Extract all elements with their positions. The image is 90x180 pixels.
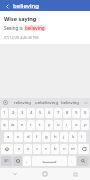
staticText: 7 bbox=[57, 110, 60, 116]
button[interactable]: . bbox=[68, 156, 76, 166]
button[interactable]: w bbox=[9, 120, 17, 130]
staticText: 1 bbox=[3, 110, 6, 116]
button[interactable]: 3 bbox=[18, 108, 26, 118]
button[interactable]: Back bbox=[0, 168, 30, 180]
button[interactable]: relieving bbox=[10, 98, 34, 107]
staticText: 6 bbox=[48, 110, 51, 116]
staticText: relieving bbox=[14, 100, 31, 106]
staticText: k bbox=[72, 134, 75, 140]
button[interactable]: 2 bbox=[9, 108, 17, 118]
button[interactable]: i bbox=[63, 120, 71, 130]
staticText: 9 bbox=[75, 110, 78, 116]
button[interactable]: r bbox=[27, 120, 35, 130]
staticText: d bbox=[27, 134, 30, 140]
button[interactable]: 8 bbox=[63, 108, 71, 118]
staticText: m bbox=[71, 146, 75, 152]
staticText: g bbox=[45, 134, 48, 140]
button[interactable]: t bbox=[36, 120, 44, 130]
button[interactable]: v bbox=[42, 144, 50, 154]
button[interactable]: d bbox=[24, 132, 32, 142]
staticText: z bbox=[18, 146, 20, 152]
staticText: Seeing is bbox=[4, 25, 24, 31]
button[interactable]: u bbox=[54, 120, 62, 130]
staticText: j bbox=[63, 134, 65, 140]
button[interactable]: k bbox=[69, 132, 77, 142]
staticText: i bbox=[66, 122, 68, 128]
button[interactable]: 5 bbox=[36, 108, 44, 118]
button[interactable]: 4 bbox=[27, 108, 35, 118]
staticText: n bbox=[63, 146, 66, 152]
staticText: 07/12/20 4:46:30 PM bbox=[4, 35, 39, 40]
button[interactable]: o bbox=[72, 120, 80, 130]
button[interactable]: unbelieving bbox=[34, 98, 58, 107]
button[interactable]: Space bbox=[32, 156, 67, 166]
staticText: 8 bbox=[66, 110, 69, 116]
staticText: w bbox=[11, 122, 15, 128]
staticText: believing bbox=[25, 25, 45, 31]
button[interactable]: 6 bbox=[45, 108, 53, 118]
button[interactable]: q bbox=[1, 120, 8, 130]
staticText: s bbox=[17, 134, 20, 140]
staticText: 3 bbox=[21, 110, 24, 116]
button[interactable]: s bbox=[14, 132, 23, 142]
button[interactable]: h bbox=[51, 132, 59, 142]
button[interactable]: !#1 bbox=[1, 156, 12, 166]
staticText: p bbox=[84, 122, 87, 128]
button[interactable]: believing bbox=[58, 98, 82, 107]
staticText: q bbox=[3, 122, 6, 128]
staticText: 0 bbox=[84, 110, 87, 116]
button[interactable]: More suggestions bbox=[82, 98, 90, 107]
button[interactable]: y bbox=[45, 120, 53, 130]
staticText: e bbox=[21, 122, 24, 128]
staticText: a bbox=[7, 134, 10, 140]
button[interactable]: n bbox=[60, 144, 68, 154]
button[interactable]: b bbox=[51, 144, 59, 154]
staticText: u bbox=[57, 122, 60, 128]
button[interactable]: believing bbox=[13, 0, 87, 11]
button[interactable]: f bbox=[33, 132, 41, 142]
button[interactable]: Backspace bbox=[78, 144, 89, 154]
button[interactable]: Home bbox=[30, 168, 60, 180]
button[interactable]: x bbox=[24, 144, 32, 154]
button[interactable]: m bbox=[69, 144, 77, 154]
staticText: r bbox=[30, 122, 32, 128]
staticText: o bbox=[75, 122, 78, 128]
button[interactable]: a bbox=[4, 132, 13, 142]
staticText: , bbox=[26, 158, 28, 164]
staticText: believing bbox=[13, 2, 39, 10]
staticText: h bbox=[54, 134, 57, 140]
staticText: c bbox=[36, 146, 39, 152]
button[interactable]: Back bbox=[3, 2, 11, 10]
button[interactable]: g bbox=[42, 132, 50, 142]
staticText: 5 bbox=[39, 110, 42, 116]
staticText: 4 bbox=[30, 110, 33, 116]
button[interactable]: z bbox=[14, 144, 23, 154]
button[interactable]: 9 bbox=[72, 108, 80, 118]
staticText: 2 bbox=[12, 110, 15, 116]
staticText: f bbox=[36, 134, 38, 140]
button[interactable]: e bbox=[18, 120, 26, 130]
button[interactable]: Recents bbox=[60, 168, 90, 180]
staticText: believing bbox=[61, 100, 79, 106]
button[interactable]: Search bbox=[77, 156, 89, 166]
button[interactable]: 1 bbox=[1, 108, 8, 118]
button[interactable]: , bbox=[23, 156, 31, 166]
button[interactable]: Emoji bbox=[13, 156, 22, 166]
staticText: Wise saying bbox=[4, 15, 37, 22]
button[interactable]: c bbox=[33, 144, 41, 154]
button[interactable]: j bbox=[60, 132, 68, 142]
button[interactable]: 7 bbox=[54, 108, 62, 118]
staticText: . bbox=[71, 158, 73, 164]
staticText: unbelieving bbox=[35, 100, 58, 106]
button[interactable]: Shift bbox=[1, 144, 13, 154]
staticText: t bbox=[39, 122, 41, 128]
button[interactable]: p bbox=[81, 120, 89, 130]
staticText: v bbox=[45, 146, 48, 152]
staticText: y bbox=[48, 122, 51, 128]
button[interactable]: l bbox=[78, 132, 86, 142]
staticText: l bbox=[81, 134, 83, 140]
button[interactable]: Voice input bbox=[0, 98, 10, 107]
button[interactable]: 0 bbox=[81, 108, 89, 118]
staticText: x bbox=[27, 146, 30, 152]
staticText: !#1 bbox=[4, 159, 9, 163]
